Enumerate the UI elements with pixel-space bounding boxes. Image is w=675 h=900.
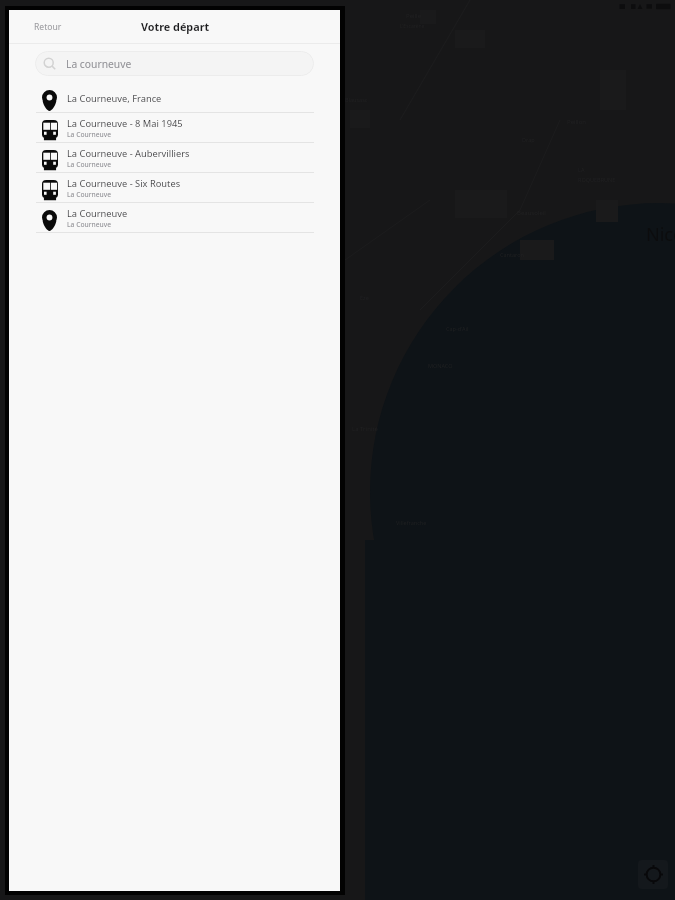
- staticText: La Courneuve: [67, 130, 112, 139]
- staticText: La Courneuve: [67, 207, 128, 220]
- staticText: La Courneuve: [67, 160, 112, 169]
- staticText: Cantaron: [500, 251, 524, 258]
- staticText: La courneuve: [66, 57, 132, 71]
- staticText: MONACO: [428, 362, 453, 369]
- button[interactable]: Retour: [9, 10, 74, 43]
- staticText: La Courneuve - 8 Mai 1945: [67, 117, 183, 130]
- staticText: La Courneuve: [67, 190, 112, 199]
- button[interactable]: My location: [638, 860, 668, 889]
- button[interactable]: La Courneuve - Six Routes: [9, 173, 340, 202]
- staticText: Cap-d'Ail: [446, 325, 469, 332]
- staticText: La Courneuve: [67, 220, 112, 229]
- button[interactable]: La Courneuve - 8 Mai 1945: [9, 113, 340, 142]
- staticText: La Courneuve - Aubervilliers: [67, 147, 190, 160]
- button[interactable]: La Courneuve: [9, 203, 340, 232]
- staticText: Retour: [34, 21, 62, 33]
- staticText: La Courneuve - Six Routes: [67, 177, 181, 190]
- button[interactable]: La courneuve: [35, 51, 314, 76]
- staticText: Votre départ: [141, 19, 210, 34]
- button[interactable]: La Courneuve, France: [9, 84, 340, 112]
- button[interactable]: La Courneuve - Aubervilliers: [9, 143, 340, 172]
- staticText: Villefranche: [396, 519, 427, 526]
- staticText: La Courneuve, France: [67, 92, 162, 105]
